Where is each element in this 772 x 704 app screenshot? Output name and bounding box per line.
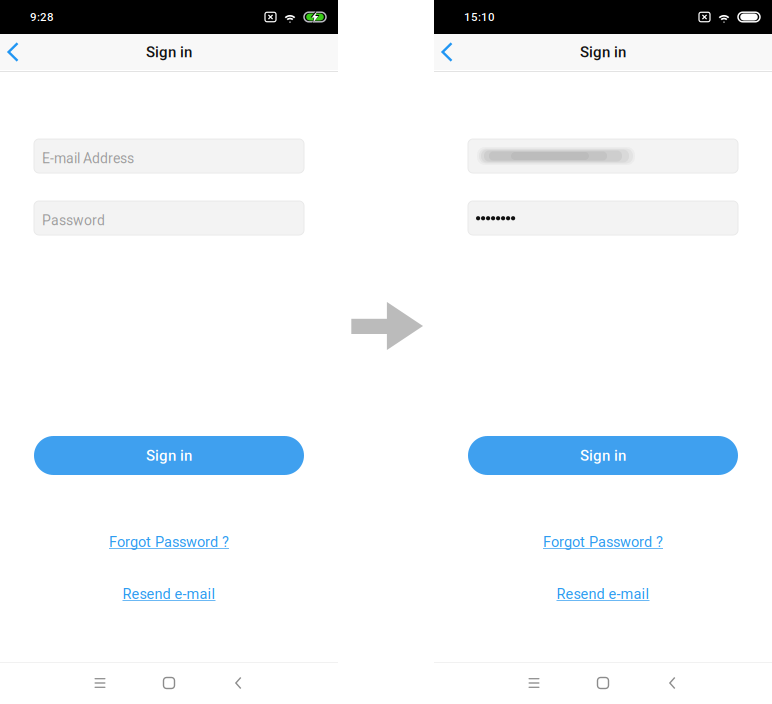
button[interactable]: Resend e-mail [468,585,738,603]
button[interactable]: Sign in [468,436,738,475]
staticText: Sign in [580,447,626,464]
button[interactable]: Sign in [34,436,304,475]
button[interactable]: Home [147,662,191,704]
button[interactable]: Back [216,662,260,704]
staticText: Resend e-mail [122,585,215,602]
staticText: E-mail Address [42,150,134,167]
staticText: Forgot Password ? [109,533,229,550]
button[interactable]: Home [581,662,625,704]
staticText: Sign in [146,43,192,61]
staticText: Sign in [146,447,192,464]
button[interactable]: Back [0,34,38,70]
button[interactable]: Recent apps [78,662,122,704]
button[interactable]: Back [434,34,472,70]
staticText: 15:10 [464,10,495,24]
button[interactable]: Recent apps [512,662,556,704]
staticText: Sign in [580,43,626,61]
staticText: Password [42,212,105,229]
button[interactable]: Back [650,662,694,704]
button[interactable]: Forgot Password ? [468,533,738,551]
staticText: 9:28 [30,10,54,24]
button[interactable]: Resend e-mail [34,585,304,603]
staticText: Forgot Password ? [543,533,663,550]
button[interactable]: Forgot Password ? [34,533,304,551]
staticText: Resend e-mail [556,585,649,602]
